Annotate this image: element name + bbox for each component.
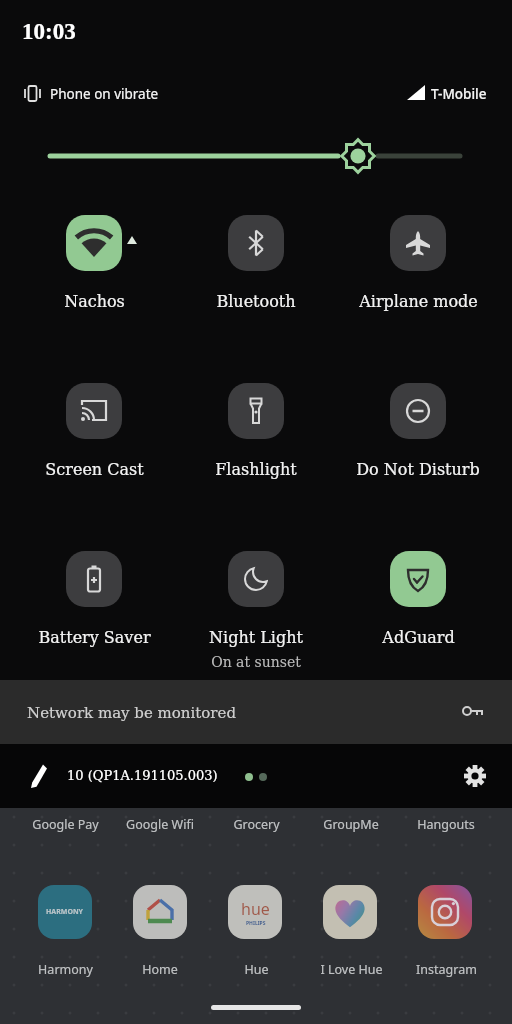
staticText: On at sunset	[211, 654, 301, 670]
staticText: Instagram	[416, 961, 477, 978]
staticText: Do Not Disturb	[356, 460, 480, 479]
staticText: 10:03	[22, 19, 76, 44]
staticText: GroupMe	[323, 816, 379, 833]
staticText: Screen Cast	[45, 460, 144, 479]
staticText: Google Pay	[32, 816, 99, 833]
staticText: Flashlight	[215, 460, 297, 479]
staticText: 10 (QP1A.191105.003)	[67, 768, 218, 783]
staticText: PHILIPS	[246, 920, 266, 927]
staticText: AdGuard	[382, 628, 455, 647]
staticText: I Love Hue	[320, 961, 383, 978]
staticText: Network may be monitored	[27, 704, 237, 721]
staticText: Night Light	[209, 628, 303, 647]
staticText: Google Wifi	[126, 816, 194, 833]
staticText: Grocery	[233, 816, 280, 833]
staticText: Harmony	[38, 961, 93, 978]
staticText: Hue	[244, 961, 269, 978]
staticText: hue	[241, 898, 270, 920]
staticText: HARMONY	[46, 907, 84, 917]
staticText: Airplane mode	[359, 292, 478, 311]
staticText: Battery Saver	[38, 628, 151, 647]
staticText: Phone on vibrate	[50, 85, 159, 103]
staticText: Nachos	[64, 292, 125, 311]
staticText: Home	[142, 961, 178, 978]
staticText: T-Mobile	[431, 85, 487, 103]
staticText: Bluetooth	[216, 292, 296, 311]
staticText: Hangouts	[417, 816, 475, 833]
